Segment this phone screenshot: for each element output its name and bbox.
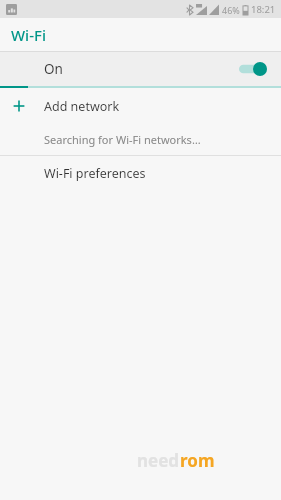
button[interactable]: Wi-Fi preferences bbox=[0, 156, 281, 191]
staticText: Wi-Fi preferences bbox=[44, 165, 146, 182]
staticText: Add network bbox=[44, 98, 120, 115]
button[interactable]: On bbox=[0, 52, 281, 86]
staticText: On bbox=[44, 60, 63, 78]
staticText: Searching for Wi-Fi networks… bbox=[44, 132, 201, 147]
button[interactable]: Wi-Fi toggle, on bbox=[239, 62, 267, 76]
staticText: need bbox=[137, 449, 180, 472]
button[interactable]: Add network bbox=[0, 88, 281, 124]
staticText: 18:21 bbox=[251, 3, 276, 16]
staticText: 46% bbox=[222, 4, 240, 16]
staticText: Wi-Fi bbox=[11, 25, 46, 45]
staticText: rom bbox=[180, 449, 215, 472]
